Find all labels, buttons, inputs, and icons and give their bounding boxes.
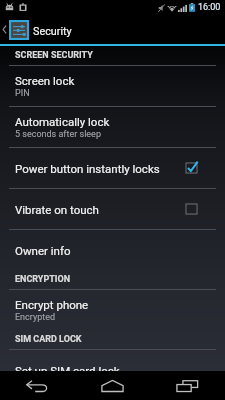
staticText: 16:00 (198, 2, 221, 13)
staticText: Automatically lock (15, 115, 110, 128)
button[interactable]: Vibrate on touch (0, 189, 225, 229)
button[interactable]: Navigate up (0, 15, 29, 44)
staticText: 5 seconds after sleep (15, 129, 101, 140)
staticText: SIM CARD LOCK (15, 334, 82, 345)
staticText: PIN (15, 88, 30, 99)
staticText: Owner info (15, 244, 71, 257)
staticText: Vibrate on touch (15, 203, 186, 216)
button[interactable]: Home (75, 371, 150, 400)
button[interactable]: Back (0, 371, 75, 400)
staticText: Encrypted (15, 312, 56, 323)
button[interactable]: Recent apps (150, 371, 225, 400)
button[interactable]: Screen lock (0, 66, 225, 106)
button[interactable]: Owner info (0, 230, 225, 270)
staticText: Screen lock (15, 74, 75, 87)
staticText: SCREEN SECURITY (15, 50, 93, 61)
staticText: Power button instantly locks (15, 162, 186, 175)
button[interactable]: Power button instantly locks (0, 148, 225, 188)
staticText: Encrypt phone (15, 298, 89, 311)
button[interactable]: Automatically lock (0, 107, 225, 147)
staticText: ENCRYPTION (15, 274, 70, 285)
button[interactable]: Set up SIM card lock (0, 350, 225, 371)
staticText: Security (33, 25, 72, 38)
staticText: Set up SIM card lock (15, 364, 120, 377)
button[interactable]: Encrypt phone (0, 290, 225, 330)
